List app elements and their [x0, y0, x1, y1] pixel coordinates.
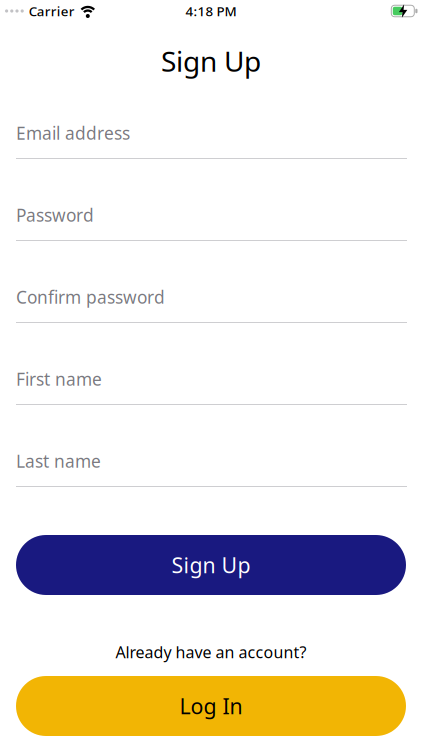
staticText: Sign Up — [171, 551, 250, 579]
staticText: Sign Up — [161, 42, 261, 80]
staticText: Log In — [179, 692, 242, 720]
staticText: Email address — [16, 121, 130, 144]
staticText: Carrier — [29, 2, 75, 20]
staticText: Password — [16, 203, 94, 226]
staticText: First name — [16, 367, 102, 390]
button[interactable]: Log In — [0, 676, 422, 736]
staticText: Last name — [16, 449, 101, 472]
staticText: Already have an account? — [115, 641, 306, 663]
button[interactable]: Sign Up — [0, 535, 422, 595]
staticText: 4:18 PM — [185, 2, 236, 20]
staticText: Confirm password — [16, 285, 165, 308]
